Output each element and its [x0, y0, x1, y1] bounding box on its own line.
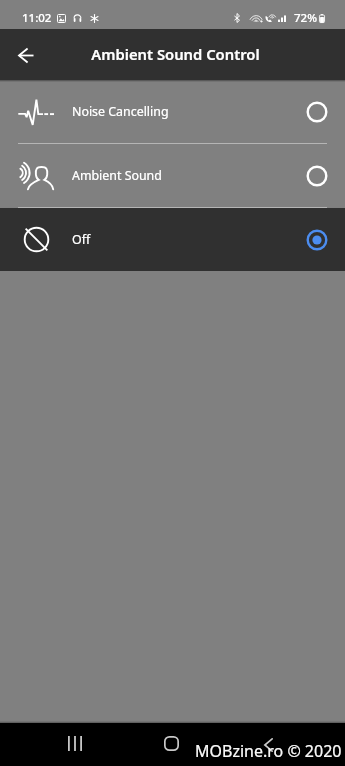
button[interactable]: Recents — [53, 722, 97, 765]
staticText: Ambient Sound — [72, 167, 288, 184]
button[interactable]: Ambient Sound — [0, 144, 345, 207]
button[interactable]: Off — [0, 208, 345, 271]
button[interactable]: Navigate up — [8, 37, 44, 73]
button[interactable]: Noise Cancelling — [0, 80, 345, 143]
staticText: Off — [72, 231, 288, 248]
staticText: 72% — [294, 10, 317, 26]
staticText: Ambient Sound Control — [91, 44, 260, 64]
button[interactable]: Home — [149, 722, 193, 765]
staticText: MOBzine.ro © 2020 — [195, 740, 342, 762]
staticText: Noise Cancelling — [72, 103, 288, 120]
staticText: 11:02 — [22, 10, 52, 26]
button[interactable]: Back — [246, 723, 290, 766]
